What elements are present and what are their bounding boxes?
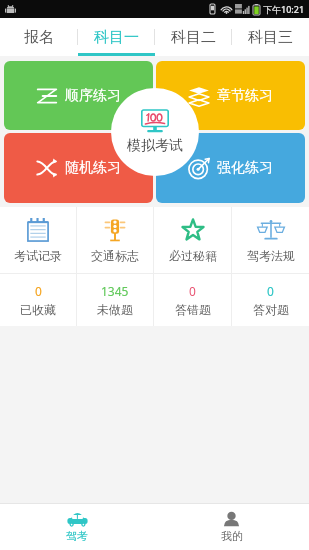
staticText: 模拟考试 bbox=[127, 137, 183, 155]
button[interactable]: 考试记录 bbox=[0, 207, 76, 273]
button[interactable]: 驾考法规 bbox=[232, 207, 309, 273]
staticText: 答对题 bbox=[253, 302, 289, 317]
button[interactable]: 0 bbox=[0, 274, 76, 326]
staticText: 强化练习 bbox=[217, 159, 273, 177]
staticText: 驾考法规 bbox=[247, 248, 295, 263]
staticText: 顺序练习 bbox=[65, 87, 121, 105]
staticText: 0 bbox=[189, 283, 196, 299]
button[interactable]: 模拟考试 bbox=[111, 88, 199, 176]
button[interactable]: 随机练习 bbox=[4, 133, 153, 203]
button[interactable]: 0 bbox=[154, 274, 231, 326]
button[interactable]: 0 bbox=[232, 274, 309, 326]
staticText: 随机练习 bbox=[65, 159, 121, 177]
button[interactable]: 交通标志 bbox=[77, 207, 153, 273]
staticText: 我的 bbox=[221, 529, 243, 543]
staticText: 科目二 bbox=[171, 28, 216, 47]
staticText: 必过秘籍 bbox=[169, 248, 217, 263]
button[interactable]: 必过秘籍 bbox=[154, 207, 231, 273]
staticText: 已收藏 bbox=[20, 302, 56, 317]
button[interactable]: 章节练习 bbox=[156, 61, 305, 130]
button[interactable]: 报名 bbox=[0, 18, 78, 56]
staticText: 0 bbox=[35, 283, 42, 299]
staticText: 0 bbox=[267, 283, 274, 299]
button[interactable]: 科目二 bbox=[155, 18, 232, 56]
staticText: 考试记录 bbox=[14, 248, 62, 263]
staticText: 答错题 bbox=[175, 302, 211, 317]
staticText: 报名 bbox=[24, 28, 54, 47]
staticText: 1345 bbox=[101, 283, 129, 299]
staticText: 科目一 bbox=[94, 28, 139, 47]
button[interactable]: 科目一 bbox=[78, 18, 155, 56]
button[interactable]: 科目三 bbox=[232, 18, 309, 56]
button[interactable]: 顺序练习 bbox=[4, 61, 153, 130]
staticText: 科目三 bbox=[248, 28, 293, 47]
button[interactable]: 强化练习 bbox=[156, 133, 305, 203]
button[interactable]: 我的 bbox=[154, 504, 309, 550]
staticText: 章节练习 bbox=[217, 87, 273, 105]
button[interactable]: 驾考 bbox=[0, 504, 154, 550]
button[interactable]: 1345 bbox=[77, 274, 153, 326]
staticText: 下午10:21 bbox=[263, 3, 305, 15]
staticText: 未做题 bbox=[97, 302, 133, 317]
staticText: 驾考 bbox=[66, 529, 88, 543]
staticText: 交通标志 bbox=[91, 248, 139, 263]
